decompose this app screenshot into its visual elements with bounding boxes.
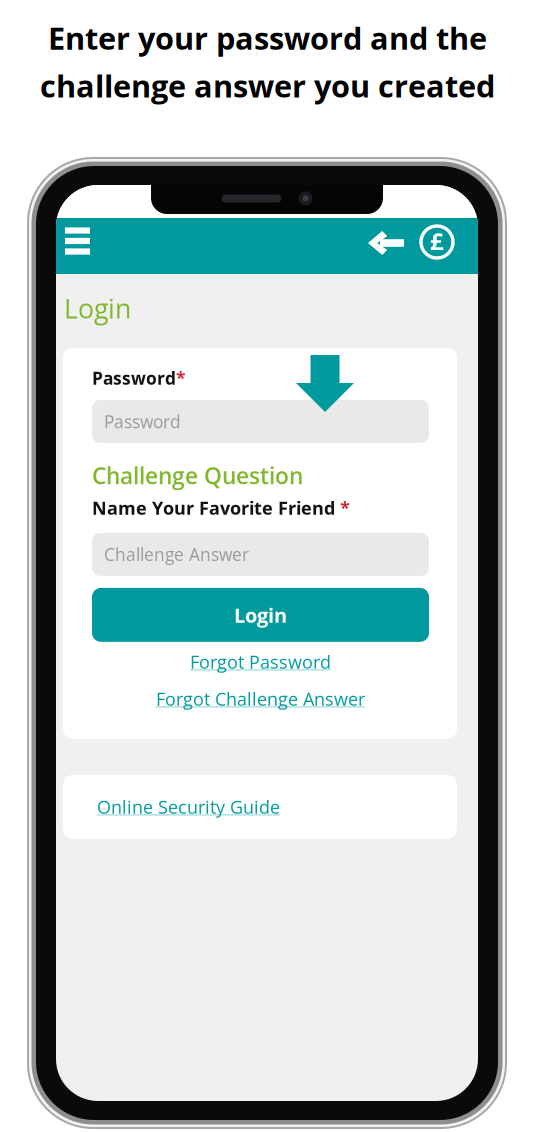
staticText: Password — [104, 410, 181, 433]
staticText: Forgot Challenge Answer — [156, 687, 365, 711]
staticText: £ — [430, 225, 444, 257]
staticText: Login — [64, 290, 131, 326]
button[interactable]: Forgot Challenge Answer — [92, 685, 429, 713]
button[interactable]: Menu — [56, 218, 112, 274]
staticText: * — [176, 366, 185, 390]
button[interactable]: Forgot Password — [92, 648, 429, 676]
button[interactable]: Login — [92, 588, 429, 642]
staticText: Name Your Favorite Friend — [92, 496, 340, 520]
staticText: Online Security Guide — [97, 795, 280, 819]
staticText: Password — [92, 366, 176, 390]
staticText: * — [340, 496, 350, 520]
staticText: Challenge Answer — [104, 543, 249, 566]
staticText: Login — [234, 601, 287, 628]
staticText: Enter your password and the — [48, 17, 487, 59]
staticText: Challenge Question — [92, 460, 303, 491]
button[interactable]: Account — [406, 218, 468, 274]
button[interactable]: Online Security Guide — [63, 775, 457, 839]
staticText: challenge answer you created — [40, 65, 495, 107]
button[interactable]: Back — [352, 218, 406, 274]
staticText: Forgot Password — [190, 650, 331, 674]
